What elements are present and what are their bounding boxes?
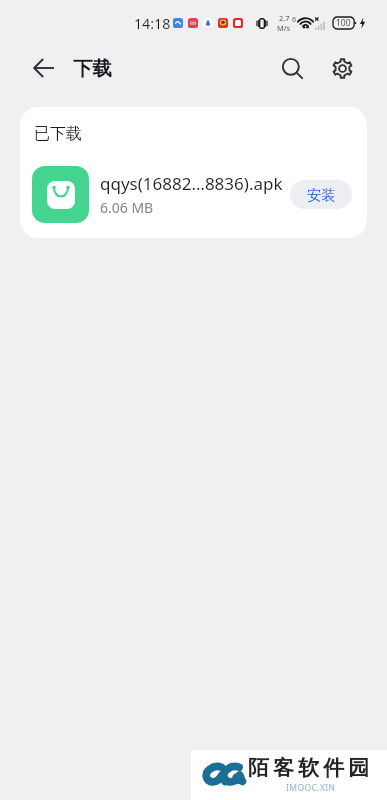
- button[interactable]: Search: [275, 51, 309, 85]
- staticText: 陌客软件园: [246, 755, 371, 781]
- button[interactable]: qqys(16882…8836).apk: [20, 166, 367, 223]
- staticText: 6: [292, 15, 297, 25]
- staticText: 100: [336, 17, 351, 29]
- staticText: IMOOC.XIN: [286, 782, 336, 794]
- staticText: qqys(16882…8836).apk: [100, 172, 283, 195]
- button[interactable]: Settings: [325, 51, 359, 85]
- staticText: 已下载: [34, 124, 82, 144]
- staticText: 14:18: [134, 14, 171, 33]
- staticText: 2.7: [279, 13, 290, 23]
- button[interactable]: Back: [26, 51, 60, 85]
- staticText: M/s: [277, 23, 291, 33]
- staticText: 6.06 MB: [100, 198, 154, 217]
- staticText: 下载: [73, 56, 112, 81]
- button[interactable]: 安装: [290, 180, 352, 209]
- staticText: 安装: [307, 186, 336, 204]
